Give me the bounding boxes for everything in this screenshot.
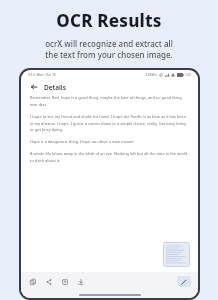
button[interactable]: Back (29, 82, 39, 92)
button[interactable]: Source image thumbnail (163, 242, 190, 267)
staticText: A whole life blows away in the blink of … (30, 151, 189, 163)
staticText: OCR Results (56, 9, 162, 32)
staticText: 3.0KB/s (145, 72, 157, 77)
button[interactable]: Save (76, 277, 85, 286)
staticText: I hope to see my friend and shake his ha… (30, 114, 189, 132)
staticText: Details (44, 83, 66, 92)
staticText: 100 (185, 73, 191, 77)
staticText: Hope is a dangerous thing. Hope can driv… (30, 139, 135, 144)
staticText: Remember, Red, hope is a good thing, may… (30, 95, 189, 107)
button[interactable]: Share (44, 277, 53, 286)
staticText: 9:14 Mon, Oct 14 (28, 72, 56, 77)
staticText: ocrX will recognize and extract all the … (45, 38, 173, 60)
button[interactable]: Translate (60, 277, 69, 286)
button[interactable]: Edit (177, 276, 191, 287)
button[interactable]: Copy (28, 277, 37, 286)
